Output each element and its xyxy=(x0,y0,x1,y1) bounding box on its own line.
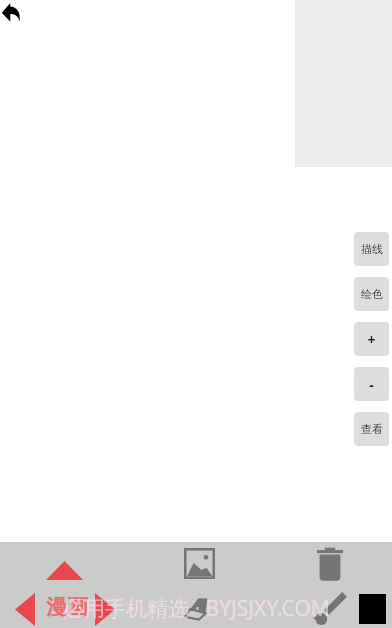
button[interactable]: 绘色 xyxy=(354,277,389,311)
button[interactable]: 描线 xyxy=(354,232,389,266)
button[interactable]: Move right xyxy=(95,593,115,626)
button[interactable]: Open image xyxy=(184,548,215,579)
button[interactable]: Delete xyxy=(317,547,343,581)
button[interactable]: 查看 xyxy=(354,412,389,446)
staticText: + xyxy=(367,330,376,349)
staticText: - xyxy=(369,375,374,394)
button[interactable]: Move up xyxy=(46,561,83,580)
staticText: 绘色 xyxy=(361,287,383,301)
staticText: 查看 xyxy=(361,422,383,436)
button[interactable]: Eraser xyxy=(184,597,208,620)
button[interactable]: Move left xyxy=(15,593,35,626)
button[interactable]: + xyxy=(354,322,389,356)
staticText: 描线 xyxy=(361,242,383,256)
staticText: 漫画 xyxy=(46,594,88,620)
button[interactable]: Brush xyxy=(313,591,347,625)
button[interactable]: - xyxy=(354,367,389,401)
button[interactable]: Undo xyxy=(0,0,26,26)
staticText: 必用手机精选 · BYJSJXY.COM xyxy=(63,594,330,623)
